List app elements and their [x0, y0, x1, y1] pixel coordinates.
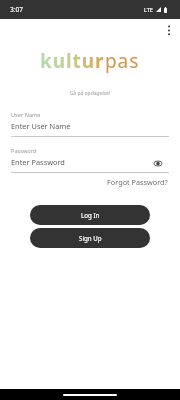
staticText: Sign Up — [79, 234, 102, 242]
button[interactable]: More options — [161, 20, 177, 40]
button[interactable]: Log In — [30, 205, 150, 225]
button[interactable]: Forgot Password? — [95, 176, 180, 188]
staticText: User Name — [11, 111, 41, 119]
staticText: Enter Password — [11, 157, 65, 167]
staticText: LTE — [144, 6, 153, 13]
button[interactable]: Sign Up — [30, 228, 150, 248]
staticText: Log In — [81, 211, 100, 219]
staticText: kultur — [40, 48, 105, 74]
staticText: Password — [11, 147, 37, 155]
staticText: Enter User Name — [11, 121, 71, 131]
staticText: 3:07 — [10, 5, 23, 14]
button[interactable]: Show password — [151, 157, 164, 170]
staticText: Gå på opdagelse! — [0, 90, 180, 97]
staticText: pas — [105, 48, 140, 74]
